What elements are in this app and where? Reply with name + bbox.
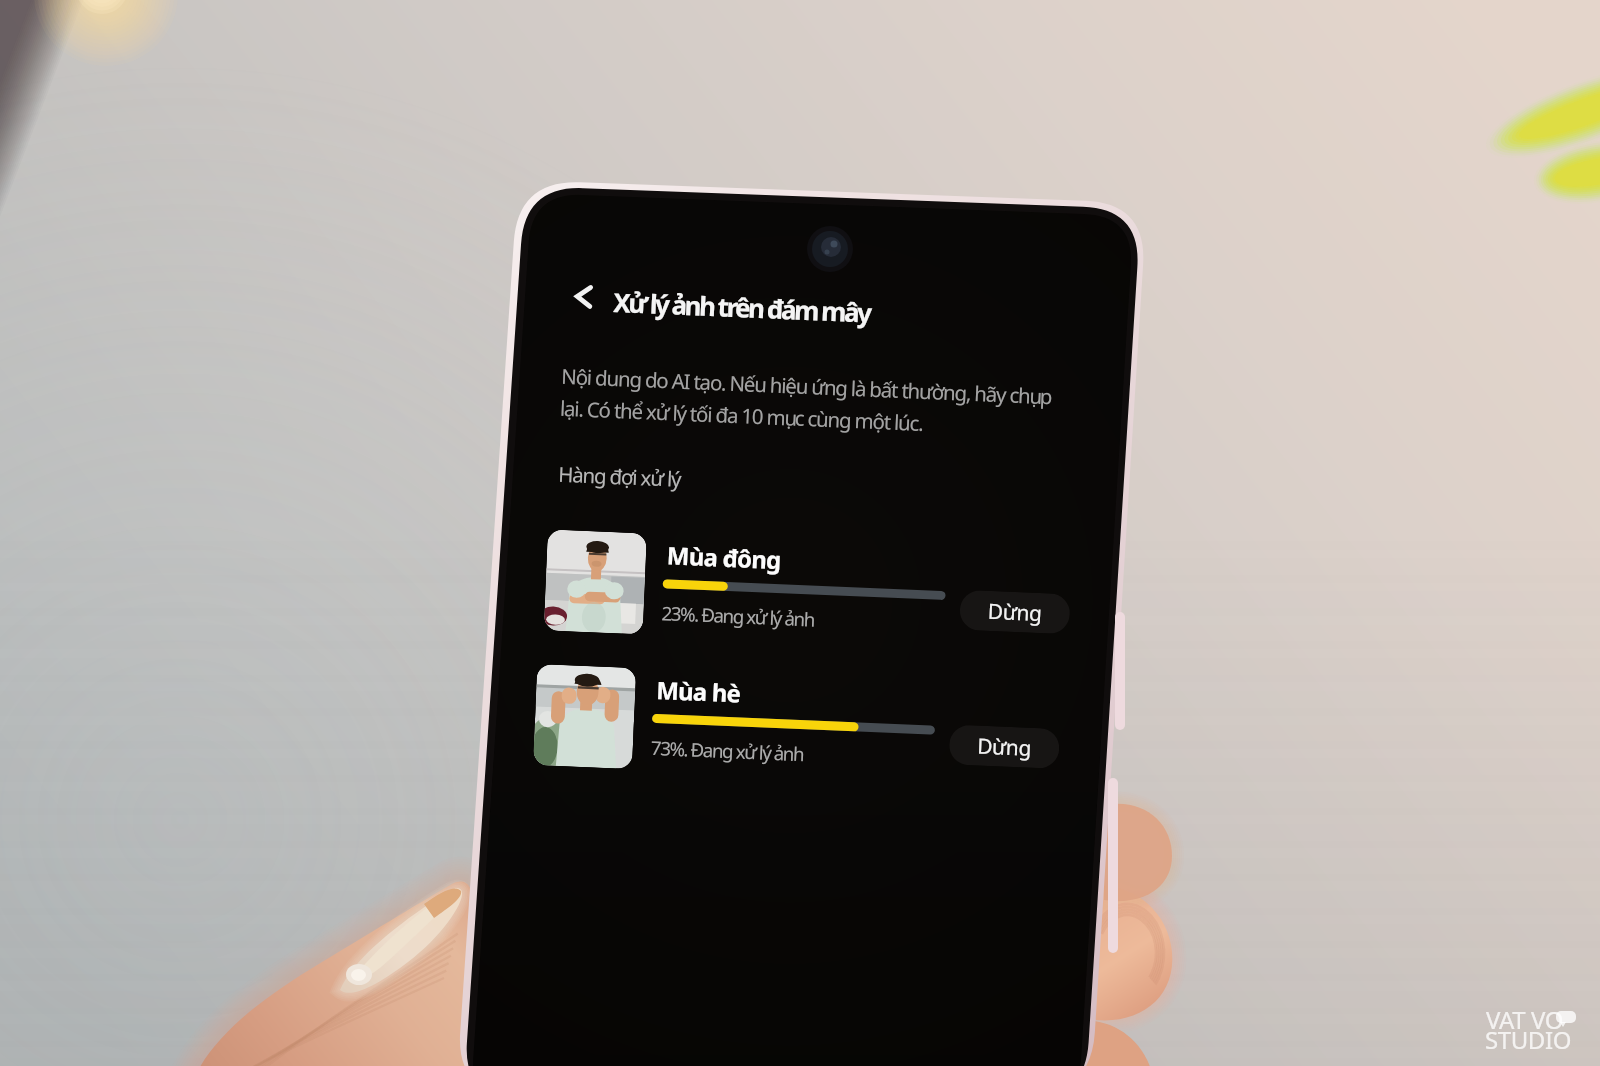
button[interactable] bbox=[533, 664, 636, 769]
staticText: STUDIO bbox=[1485, 1023, 1572, 1056]
button[interactable] bbox=[544, 529, 647, 634]
staticText: VAT VO bbox=[1486, 1003, 1564, 1036]
staticText: Xử lý ảnh trên đám mây bbox=[613, 284, 871, 330]
staticText: 73%. Đang xử lý ảnh bbox=[650, 735, 804, 767]
staticText: Mùa đông bbox=[666, 538, 782, 576]
button[interactable]: Dừng bbox=[959, 590, 1071, 634]
staticText: Nội dung do AI tạo. Nếu hiệu ứng là bất … bbox=[559, 362, 1053, 442]
staticText: Mùa hè bbox=[656, 673, 741, 710]
button[interactable]: Back bbox=[559, 270, 607, 318]
staticText: Dừng bbox=[977, 731, 1032, 763]
button[interactable]: Dừng bbox=[948, 724, 1060, 769]
staticText: Hàng đợi xử lý bbox=[558, 460, 682, 493]
staticText: Dừng bbox=[987, 597, 1042, 628]
staticText: 23%. Đang xử lý ảnh bbox=[661, 600, 815, 633]
